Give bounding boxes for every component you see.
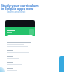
staticText: Study your curriculum	[1, 3, 39, 8]
staticText: learn and test	[7, 10, 26, 14]
staticText: in Enquiz apps now	[1, 6, 34, 11]
